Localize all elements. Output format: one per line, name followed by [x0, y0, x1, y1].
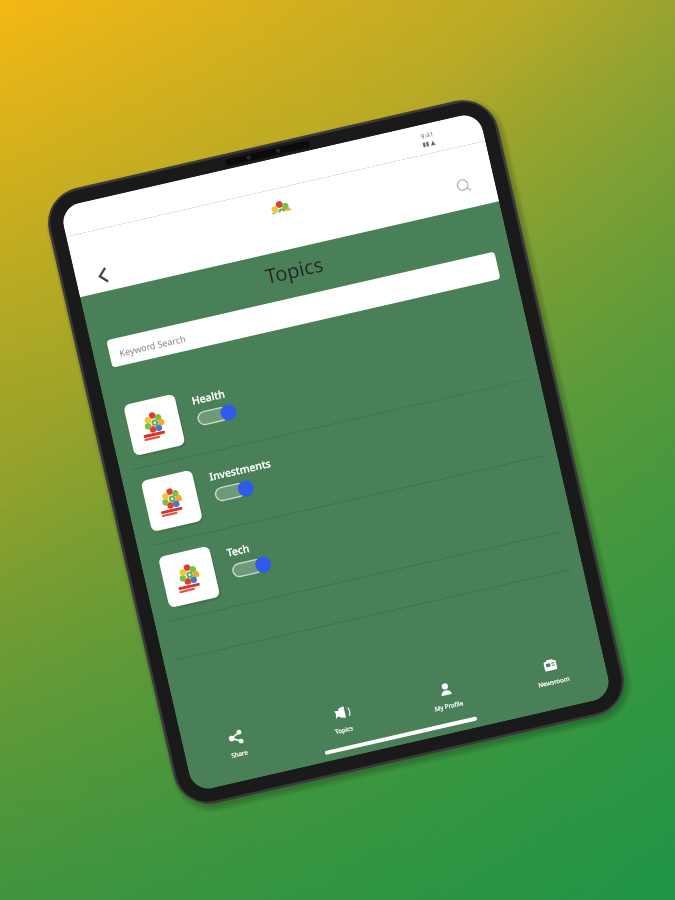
button[interactable]: Topics tablet screen: [0, 0, 675, 900]
